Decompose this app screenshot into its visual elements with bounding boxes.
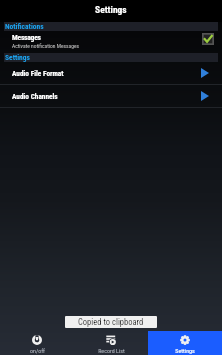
- staticText: Settings: [95, 4, 127, 15]
- staticText: on/off: [30, 347, 45, 354]
- staticText: Copied to clipboard: [78, 317, 144, 327]
- staticText: Settings: [5, 53, 30, 62]
- staticText: Activate notification Messages: [12, 43, 79, 49]
- button[interactable]: Messages: [0, 31, 222, 53]
- button[interactable]: Toggle messages notification: [199, 34, 215, 50]
- staticText: Audio Channels: [12, 92, 201, 101]
- button[interactable]: Record List: [74, 331, 148, 355]
- button[interactable]: Settings: [148, 331, 222, 355]
- staticText: Settings: [175, 347, 195, 354]
- button[interactable]: Audio File Format: [0, 62, 222, 84]
- button[interactable]: on/off: [0, 331, 74, 355]
- staticText: Audio File Format: [12, 69, 201, 78]
- button[interactable]: Audio Channels: [0, 85, 222, 107]
- staticText: Notifications: [5, 22, 44, 31]
- staticText: Record List: [98, 347, 125, 354]
- staticText: Messages: [12, 33, 41, 42]
